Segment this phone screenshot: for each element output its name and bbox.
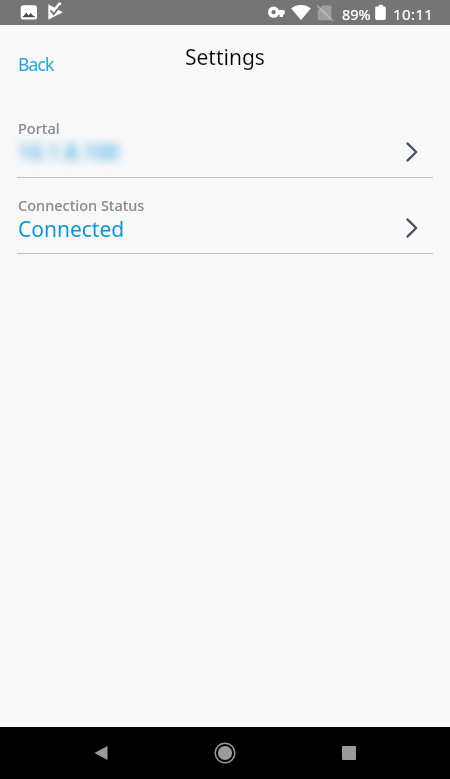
staticText: Connection Status	[18, 195, 145, 215]
staticText: 10.1.8.100	[18, 138, 119, 167]
staticText: Portal	[18, 118, 60, 138]
button[interactable]: Back	[0, 44, 72, 84]
button[interactable]: Home	[203, 731, 247, 775]
staticText: Connected	[18, 215, 125, 244]
staticText: Back	[18, 52, 54, 76]
staticText: Settings	[185, 43, 265, 72]
button[interactable]: Portal	[0, 100, 450, 178]
staticText: 10:11	[393, 4, 434, 24]
button[interactable]: Connection Status	[0, 178, 450, 254]
button[interactable]: Back	[79, 731, 123, 775]
button[interactable]: Recent apps	[327, 731, 371, 775]
staticText: 89%	[342, 4, 371, 24]
